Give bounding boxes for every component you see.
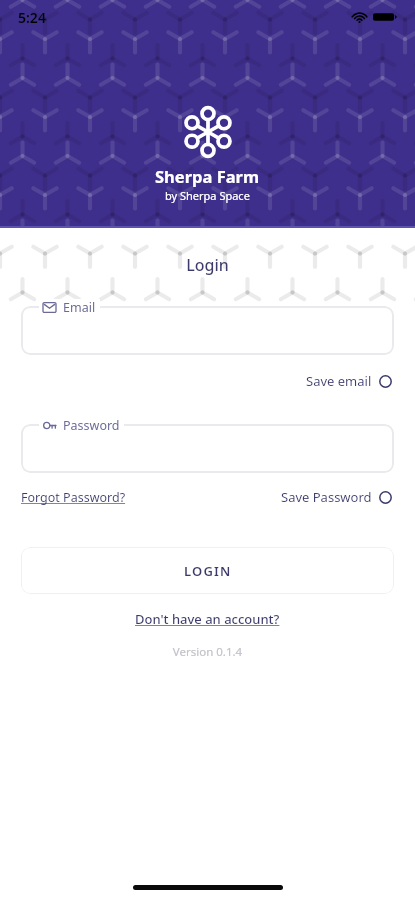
staticText: by Sherpa Space (165, 188, 250, 203)
staticText: Don't have an account? (135, 610, 280, 628)
staticText: 5:24 (18, 8, 46, 27)
button[interactable] (21, 424, 394, 473)
staticText: Sherpa Farm (155, 165, 260, 187)
staticText: Email (63, 299, 96, 316)
staticText: Version 0.1.4 (21, 644, 394, 660)
button[interactable]: Save email (304, 369, 394, 393)
button[interactable]: Don't have an account? (21, 610, 394, 628)
button[interactable]: Forgot Password? (21, 487, 126, 508)
button[interactable] (21, 306, 394, 355)
other: Save email (379, 375, 392, 388)
button[interactable]: LOGIN (21, 547, 394, 594)
staticText: Save email (306, 372, 372, 390)
staticText: Login (21, 254, 394, 276)
staticText: Forgot Password? (21, 489, 126, 506)
button[interactable]: Save Password (279, 485, 394, 509)
staticText: Password (63, 417, 120, 434)
staticText: LOGIN (184, 562, 232, 580)
staticText: Save Password (281, 488, 372, 506)
other: Save Password (379, 491, 392, 504)
